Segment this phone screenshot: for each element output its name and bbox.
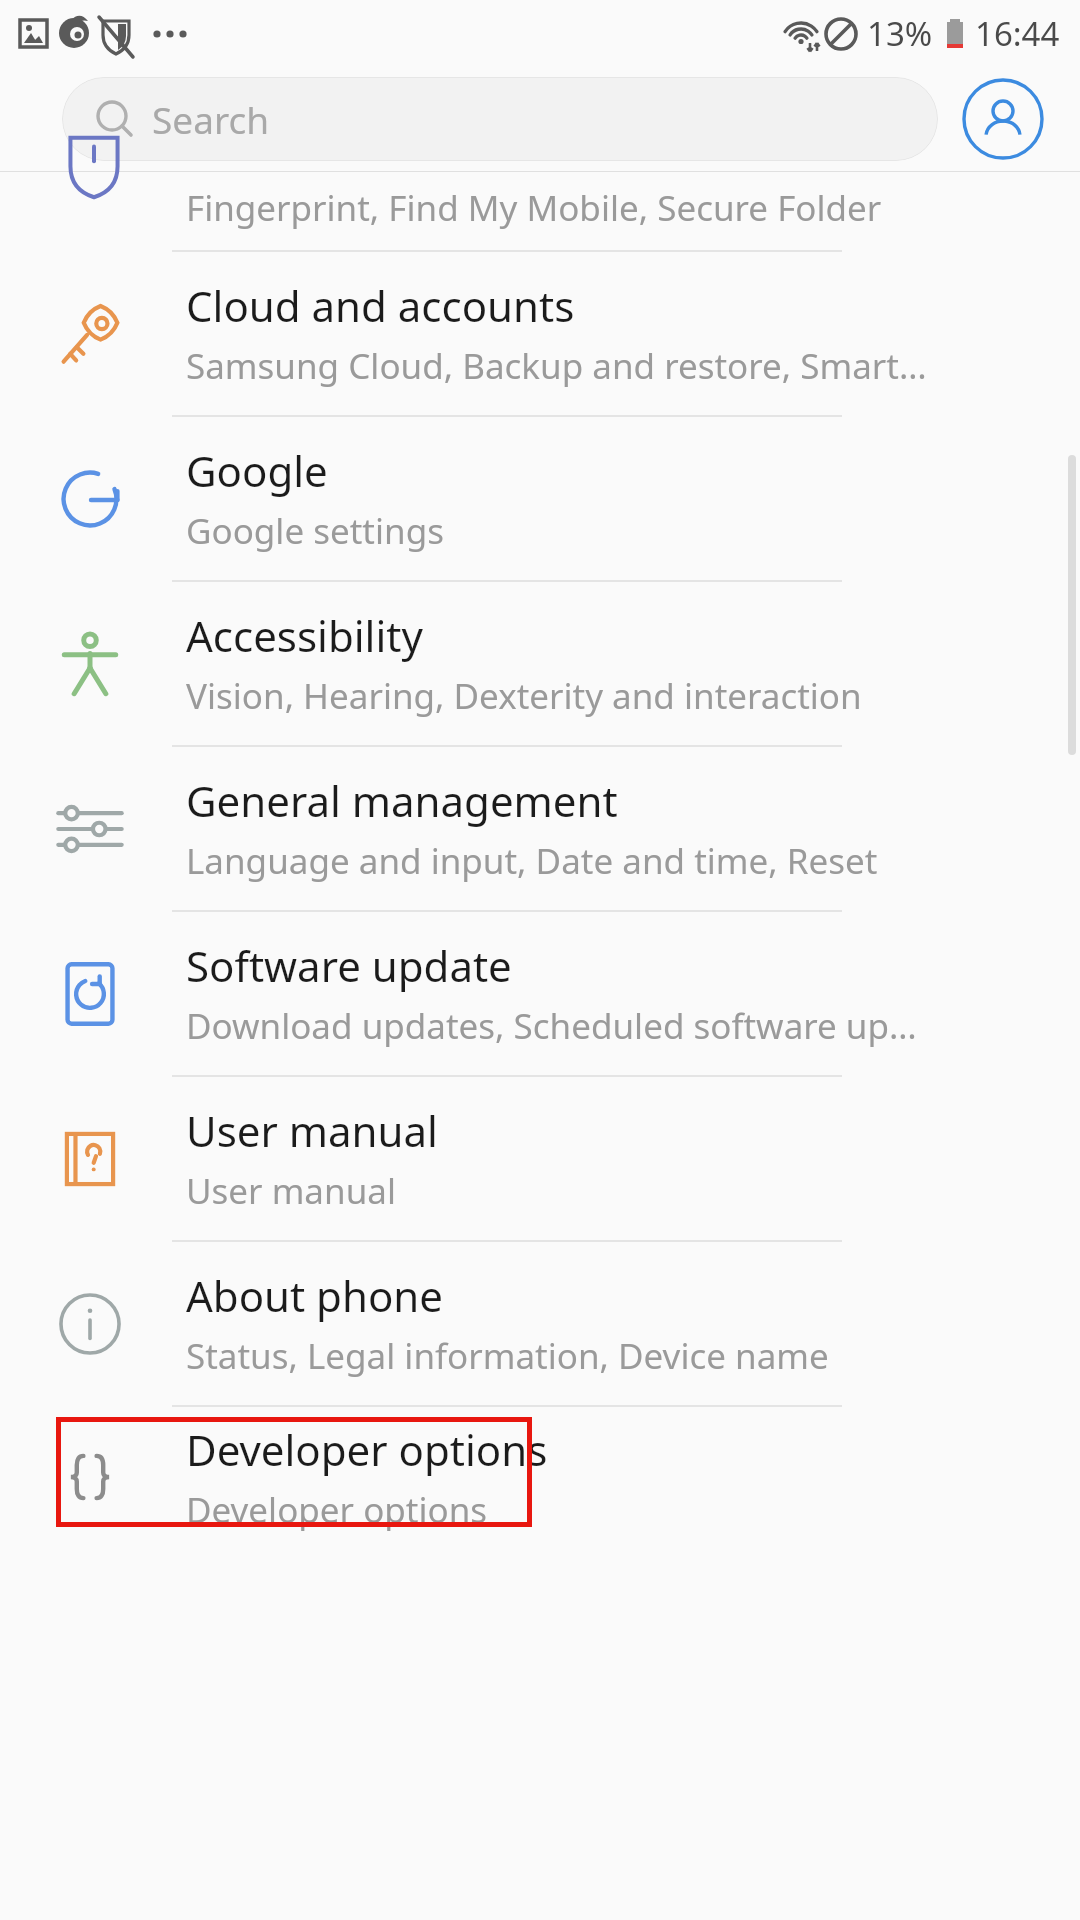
staticText: User manual: [186, 1102, 438, 1159]
button[interactable]: Accessibility: [0, 582, 1080, 745]
button[interactable]: Account: [962, 78, 1044, 160]
staticText: Vision, Hearing, Dexterity and interacti…: [186, 672, 862, 720]
staticText: Search: [152, 94, 270, 144]
staticText: Status, Legal information, Device name: [186, 1332, 829, 1380]
button[interactable]: Software update: [0, 912, 1080, 1075]
staticText: About phone: [186, 1267, 443, 1324]
staticText: Google: [186, 442, 328, 499]
staticText: 13%: [867, 11, 933, 56]
button[interactable]: Search: [62, 77, 938, 161]
staticText: User manual: [186, 1167, 396, 1215]
staticText: Accessibility: [186, 607, 423, 664]
button[interactable]: Google: [0, 417, 1080, 580]
staticText: Fingerprint, Find My Mobile, Secure Fold…: [186, 184, 882, 232]
staticText: Developer options: [186, 1486, 488, 1534]
button[interactable]: User manual: [0, 1077, 1080, 1240]
button[interactable]: General management: [0, 747, 1080, 910]
staticText: Software update: [186, 937, 512, 994]
staticText: 16:44: [975, 11, 1060, 56]
staticText: Samsung Cloud, Backup and restore, Smart…: [186, 342, 927, 390]
staticText: Developer options: [186, 1421, 548, 1478]
staticText: Download updates, Scheduled software up…: [186, 1002, 917, 1050]
staticText: Cloud and accounts: [186, 277, 575, 334]
staticText: Google settings: [186, 507, 444, 555]
staticText: General management: [186, 772, 618, 829]
staticText: Language and input, Date and time, Reset: [186, 837, 878, 885]
button[interactable]: Cloud and accounts: [0, 252, 1080, 415]
button[interactable]: About phone: [0, 1242, 1080, 1405]
button[interactable]: Developer options: [0, 1407, 1080, 1547]
